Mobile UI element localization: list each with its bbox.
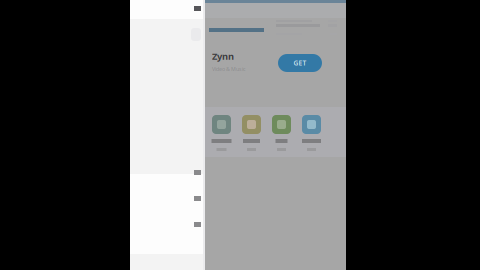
button[interactable]: Get <box>278 54 322 72</box>
button[interactable]: App <box>242 115 261 151</box>
button[interactable]: App <box>302 115 321 151</box>
button[interactable]: Menu item <box>130 222 205 227</box>
button[interactable]: Menu item <box>130 6 205 11</box>
button[interactable]: App <box>212 115 231 151</box>
staticText: Video & Music <box>212 65 246 72</box>
button[interactable]: App <box>272 115 291 151</box>
staticText: GET <box>293 59 306 67</box>
button[interactable]: Menu item <box>130 170 205 175</box>
staticText: Zynn <box>212 50 234 62</box>
button[interactable]: Menu item <box>130 196 205 201</box>
